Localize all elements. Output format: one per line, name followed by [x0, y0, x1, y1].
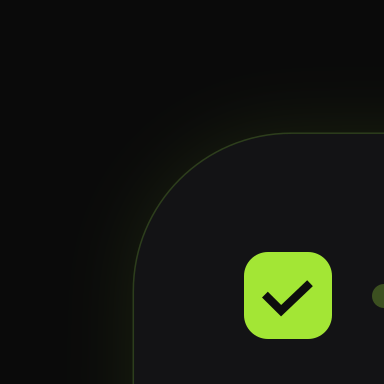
button[interactable]: Task	[133, 133, 384, 384]
button[interactable]: Mark complete	[244, 252, 332, 339]
